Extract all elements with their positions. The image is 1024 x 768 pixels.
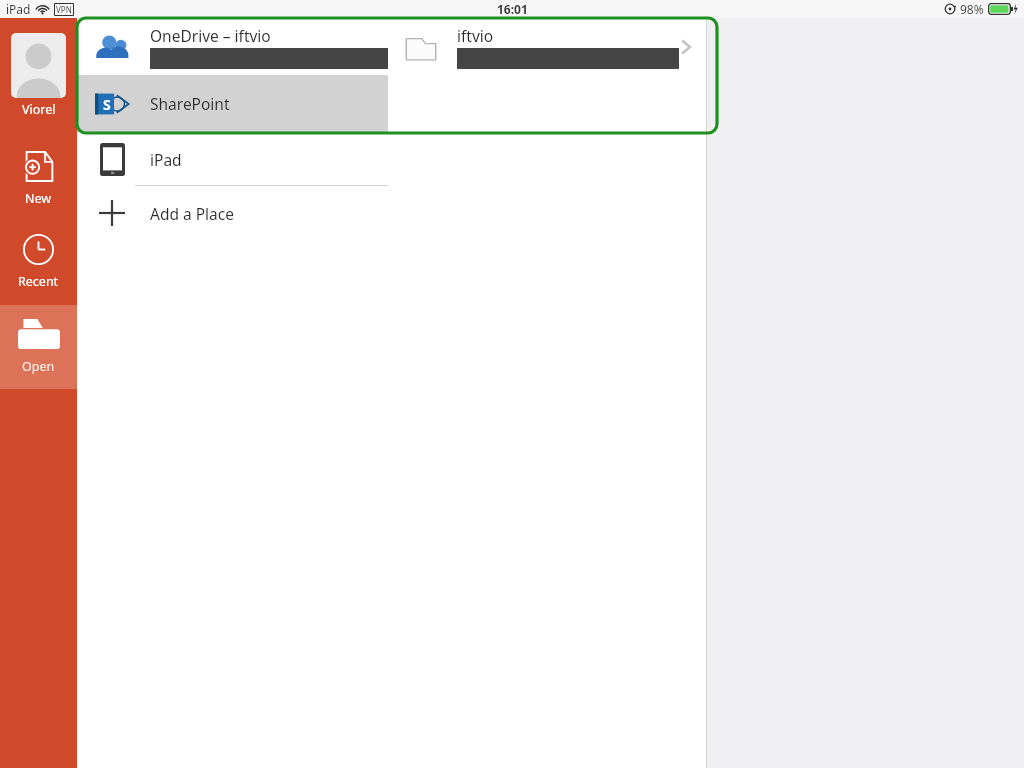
other: Open iftvio	[679, 37, 693, 57]
staticText: SharePoint	[150, 93, 230, 114]
button[interactable]: iPad	[77, 132, 388, 186]
staticText: VPN	[56, 4, 72, 15]
button[interactable]: Viorel	[0, 33, 77, 118]
button[interactable]: Open	[0, 305, 77, 389]
other: Open	[18, 319, 60, 349]
staticText: Recent	[18, 273, 59, 290]
staticText: Add a Place	[150, 203, 234, 224]
staticText: OneDrive – iftvio	[150, 25, 271, 46]
button[interactable]: iftvio	[388, 18, 707, 75]
staticText: S	[103, 95, 111, 114]
button[interactable]: S	[77, 75, 388, 132]
staticText: 98%	[960, 1, 984, 17]
staticText: iPad	[6, 1, 31, 17]
staticText: 16:01	[497, 1, 528, 17]
staticText: iftvio	[457, 25, 494, 46]
other: New	[22, 150, 55, 183]
staticText: Viorel	[22, 101, 56, 118]
staticText: New	[25, 190, 52, 207]
other: Recent	[22, 233, 55, 266]
button[interactable]: OneDrive – iftvio	[77, 18, 388, 75]
button[interactable]: New	[0, 150, 77, 207]
button[interactable]: Add a Place	[77, 186, 388, 240]
staticText: Open	[22, 358, 55, 375]
staticText: iPad	[150, 149, 182, 170]
other: Add a Place	[99, 200, 125, 226]
button[interactable]: Recent	[0, 233, 77, 290]
